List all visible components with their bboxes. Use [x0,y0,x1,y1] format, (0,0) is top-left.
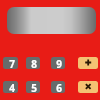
staticText: 8 [31,57,37,69]
staticText: 9 [56,57,62,69]
button[interactable]: Plus [78,57,98,69]
staticText: 6 [56,81,62,93]
staticText: 7 [9,57,15,69]
button[interactable]: Multiply [78,81,98,93]
staticText: 5 [31,81,37,93]
button[interactable]: 8 [26,57,40,69]
button[interactable]: 6 [51,81,65,93]
staticText: 4 [9,81,15,93]
button[interactable]: 5 [26,81,40,93]
button[interactable]: 4 [3,81,18,93]
button[interactable]: 7 [3,57,18,69]
button[interactable]: 9 [51,57,65,69]
